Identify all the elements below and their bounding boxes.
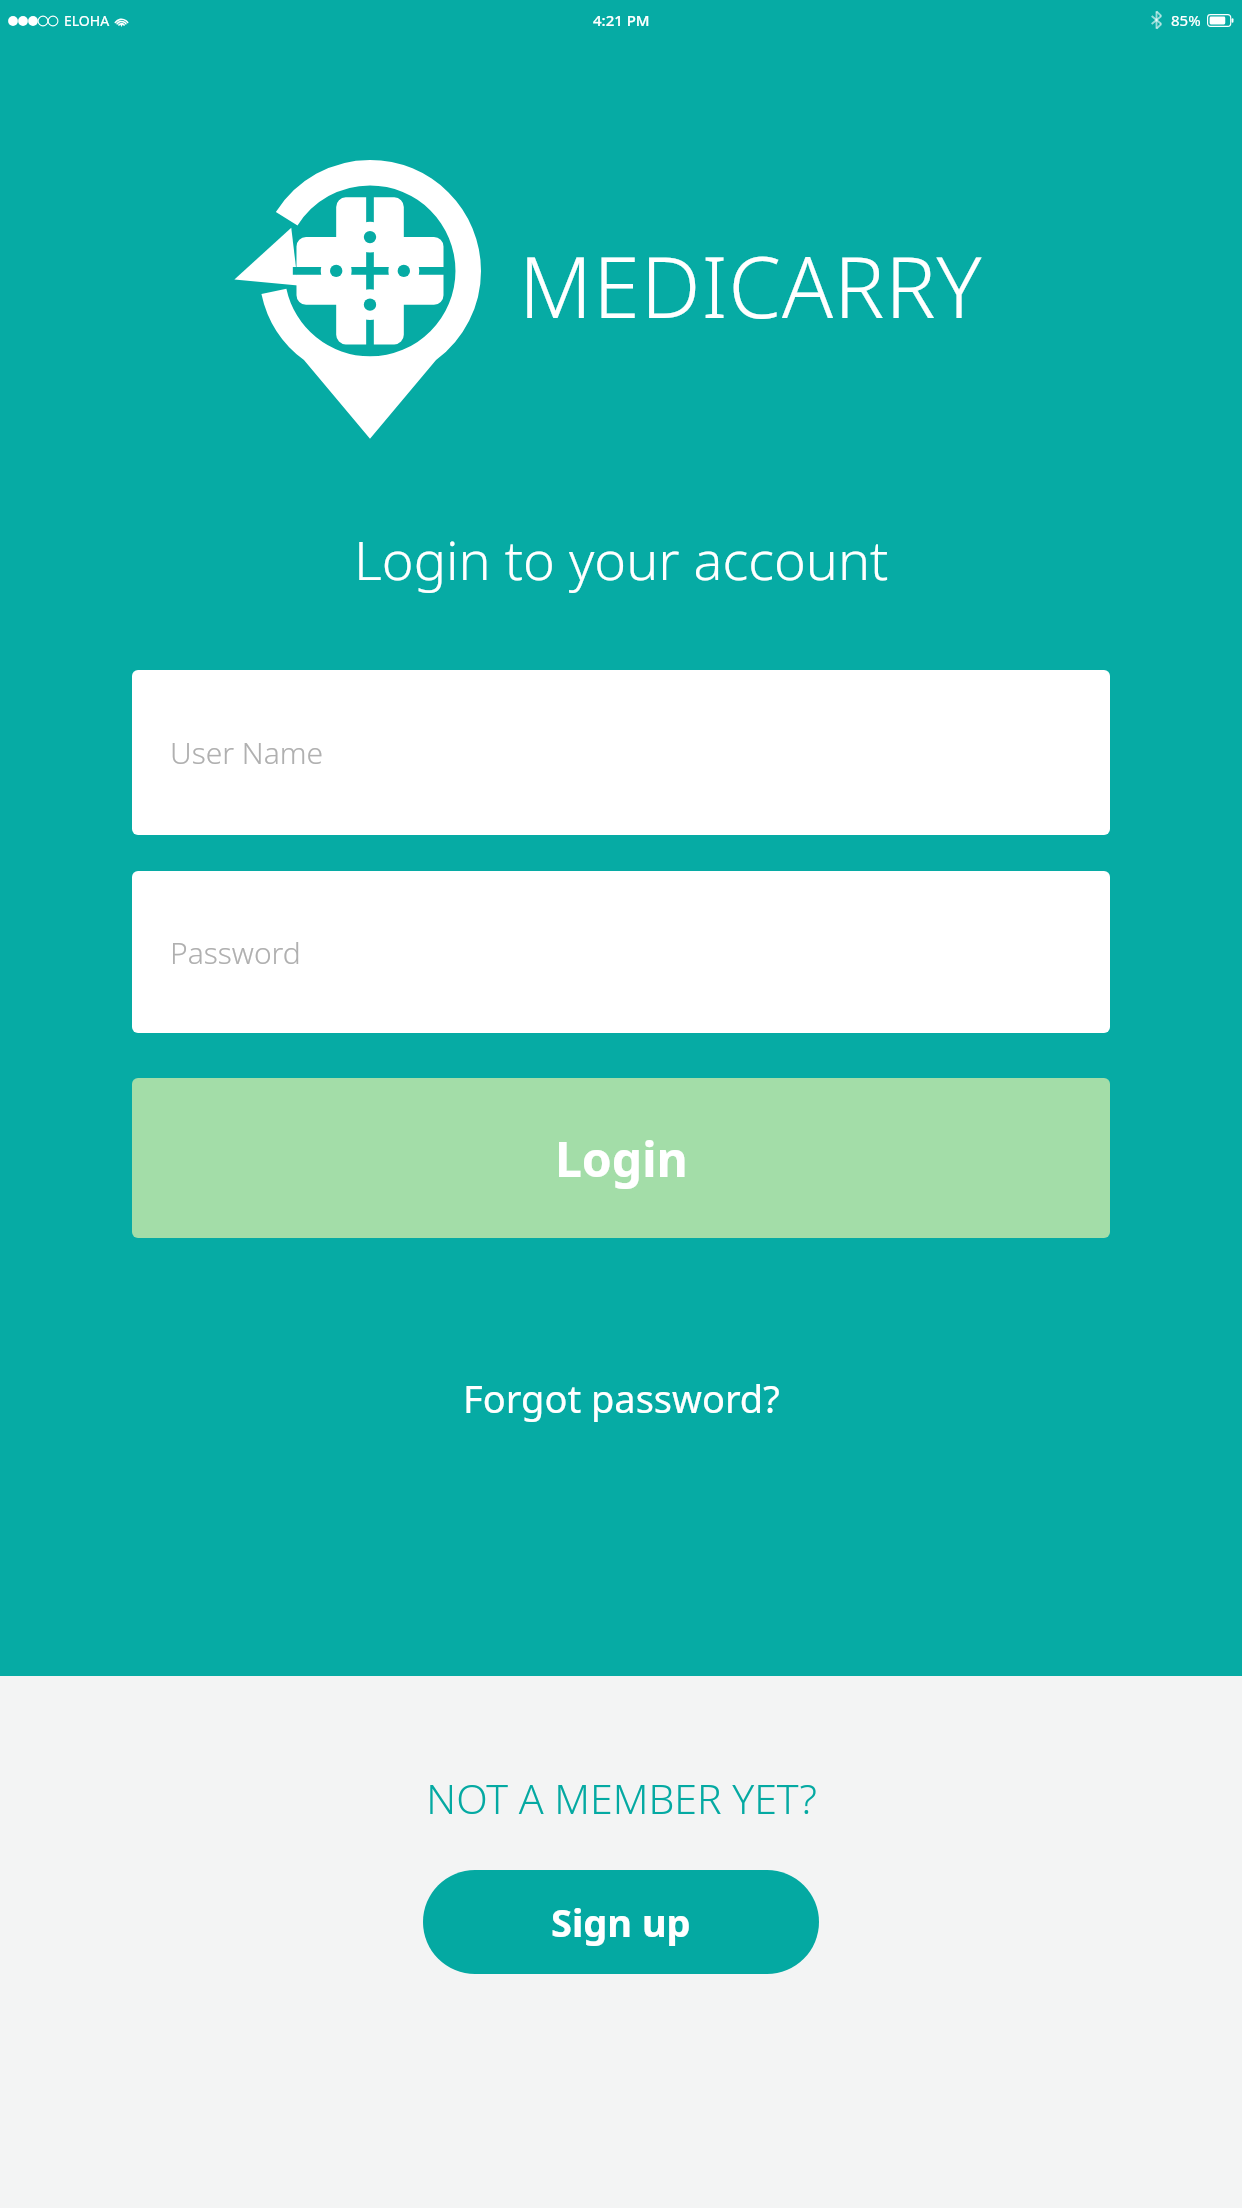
staticText: 85% bbox=[1171, 10, 1201, 30]
button[interactable]: Password bbox=[132, 871, 1110, 1033]
staticText: Password bbox=[170, 932, 301, 973]
staticText: MEDICARRY bbox=[519, 228, 983, 342]
staticText: Login to your account bbox=[354, 522, 889, 596]
staticText: Login bbox=[555, 1126, 688, 1191]
button[interactable]: Forgot password? bbox=[447, 1362, 796, 1434]
button[interactable]: User Name bbox=[132, 670, 1110, 835]
staticText: Sign up bbox=[551, 1896, 691, 1948]
staticText: 4:21 PM bbox=[593, 10, 650, 30]
staticText: User Name bbox=[170, 732, 324, 773]
other: Medicarry logo bbox=[259, 165, 481, 440]
button[interactable]: Login bbox=[132, 1078, 1110, 1238]
button[interactable]: Sign up bbox=[423, 1870, 819, 1974]
staticText: Forgot password? bbox=[463, 1372, 780, 1424]
staticText: NOT A MEMBER YET? bbox=[426, 1770, 817, 1826]
staticText: ELOHA bbox=[64, 11, 110, 30]
